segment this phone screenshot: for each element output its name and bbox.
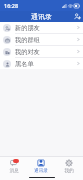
staticText: 我的对友 — [15, 48, 77, 56]
staticText: 通讯录 — [31, 12, 52, 21]
button[interactable]: 消息 — [0, 158, 27, 174]
staticText: 黑名单 — [15, 60, 77, 68]
button[interactable]: 我的 — [55, 158, 83, 174]
button[interactable]: 新的朋友 — [0, 22, 83, 34]
staticText: 新的朋友 — [15, 24, 77, 32]
staticText: 我的 — [64, 168, 74, 174]
staticText: 我的群组 — [15, 36, 77, 44]
staticText: 通讯录 — [34, 168, 48, 174]
button[interactable]: Add contact — [72, 11, 83, 22]
button[interactable]: 我的群组 — [0, 34, 83, 46]
staticText: 消息 — [9, 168, 19, 174]
staticText: 16:28 — [4, 2, 19, 9]
button[interactable]: 通讯录 — [27, 158, 55, 174]
button[interactable]: 我的对友 — [0, 46, 83, 58]
button[interactable]: 黑名单 — [0, 58, 83, 69]
